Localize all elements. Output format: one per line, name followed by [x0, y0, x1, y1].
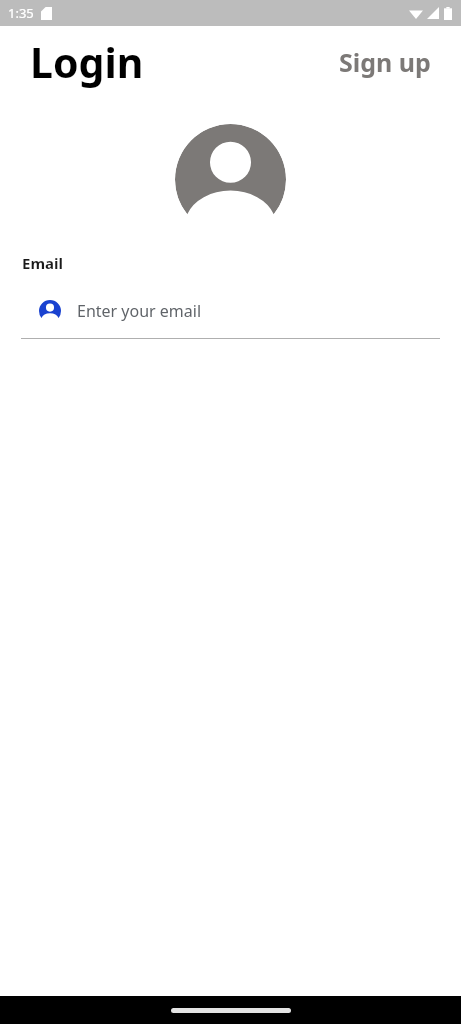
- button[interactable]: Sign up: [339, 45, 431, 79]
- button[interactable]: Home: [171, 1008, 291, 1013]
- staticText: Sign up: [339, 45, 431, 79]
- staticText: Enter your email: [77, 300, 202, 322]
- staticText: Login: [30, 34, 144, 90]
- staticText: Email: [22, 253, 63, 273]
- staticText: 1:35: [8, 4, 34, 22]
- button[interactable]: Profile picture: [175, 124, 286, 235]
- button[interactable]: Login: [30, 34, 144, 90]
- button[interactable]: Enter your email: [21, 295, 440, 339]
